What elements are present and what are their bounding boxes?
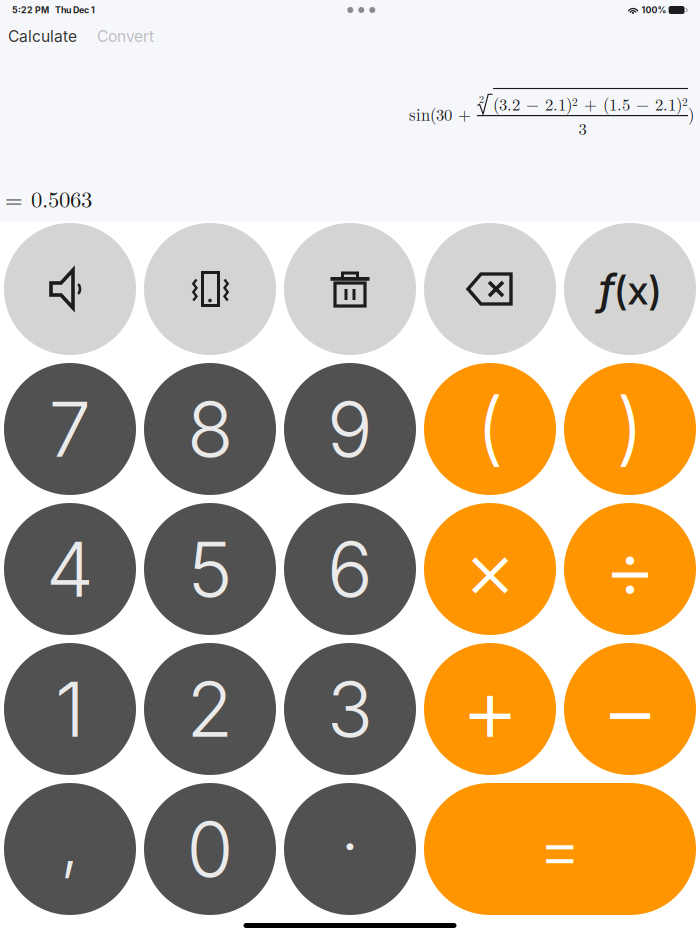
staticText: × [463, 520, 516, 618]
staticText: 7 [48, 383, 91, 475]
button[interactable]: Vibrate [144, 223, 276, 355]
button[interactable]: Delete [424, 223, 556, 355]
staticText: sin(30 + [409, 102, 477, 126]
button[interactable]: ( [424, 363, 556, 495]
staticText: (3.2 − 2.1)2 + (1.5 − 2.1)2 [493, 92, 688, 115]
staticText: , [60, 803, 79, 883]
button[interactable]: 4 [4, 503, 136, 635]
staticText: 2 [186, 663, 233, 755]
staticText: = [538, 809, 582, 889]
button[interactable]: + [424, 643, 556, 775]
button[interactable]: − [564, 643, 696, 775]
button[interactable]: Clear [284, 223, 416, 355]
staticText: ÷ [603, 520, 656, 618]
button[interactable]: 5 [144, 503, 276, 635]
button[interactable]: ÷ [564, 503, 696, 635]
button[interactable]: Sound [4, 223, 136, 355]
button[interactable]: 8 [144, 363, 276, 495]
button[interactable]: ) [564, 363, 696, 495]
staticText: 5 [187, 523, 232, 615]
button[interactable]: Functions [564, 223, 696, 355]
staticText: 0 [186, 803, 233, 895]
staticText: 3 [578, 116, 586, 140]
button[interactable]: 2 [144, 643, 276, 775]
staticText: 6 [327, 523, 373, 615]
staticText: 9 [327, 383, 373, 475]
staticText: ) [616, 379, 644, 475]
button[interactable]: 6 [284, 503, 416, 635]
staticText: 2 [479, 92, 484, 106]
staticText: = 0.5063 [5, 182, 92, 214]
button[interactable]: 9 [284, 363, 416, 495]
staticText: 100% [642, 5, 667, 15]
staticText: · [340, 805, 359, 885]
button[interactable]: , [4, 783, 136, 915]
staticText: 3 [327, 663, 373, 755]
button[interactable]: × [424, 503, 556, 635]
staticText: 8 [187, 383, 233, 475]
button[interactable]: Calculate [8, 27, 77, 46]
button[interactable]: 1 [4, 643, 136, 775]
button[interactable]: 0 [144, 783, 276, 915]
button[interactable]: · [284, 783, 416, 915]
button[interactable]: 3 [284, 643, 416, 775]
staticText: Convert [97, 27, 154, 46]
staticText: ) [688, 102, 694, 126]
staticText: 5:22 PM Thu Dec 1 [12, 5, 95, 15]
button[interactable]: Convert [77, 27, 154, 46]
staticText: 4 [46, 523, 94, 615]
staticText: 1 [55, 663, 85, 755]
button[interactable]: = [424, 783, 696, 915]
staticText: ( [476, 379, 504, 475]
staticText: + [460, 654, 519, 764]
staticText: f(x) [598, 264, 661, 314]
staticText: − [600, 654, 659, 764]
button[interactable]: 7 [4, 363, 136, 495]
staticText: Calculate [8, 27, 77, 46]
